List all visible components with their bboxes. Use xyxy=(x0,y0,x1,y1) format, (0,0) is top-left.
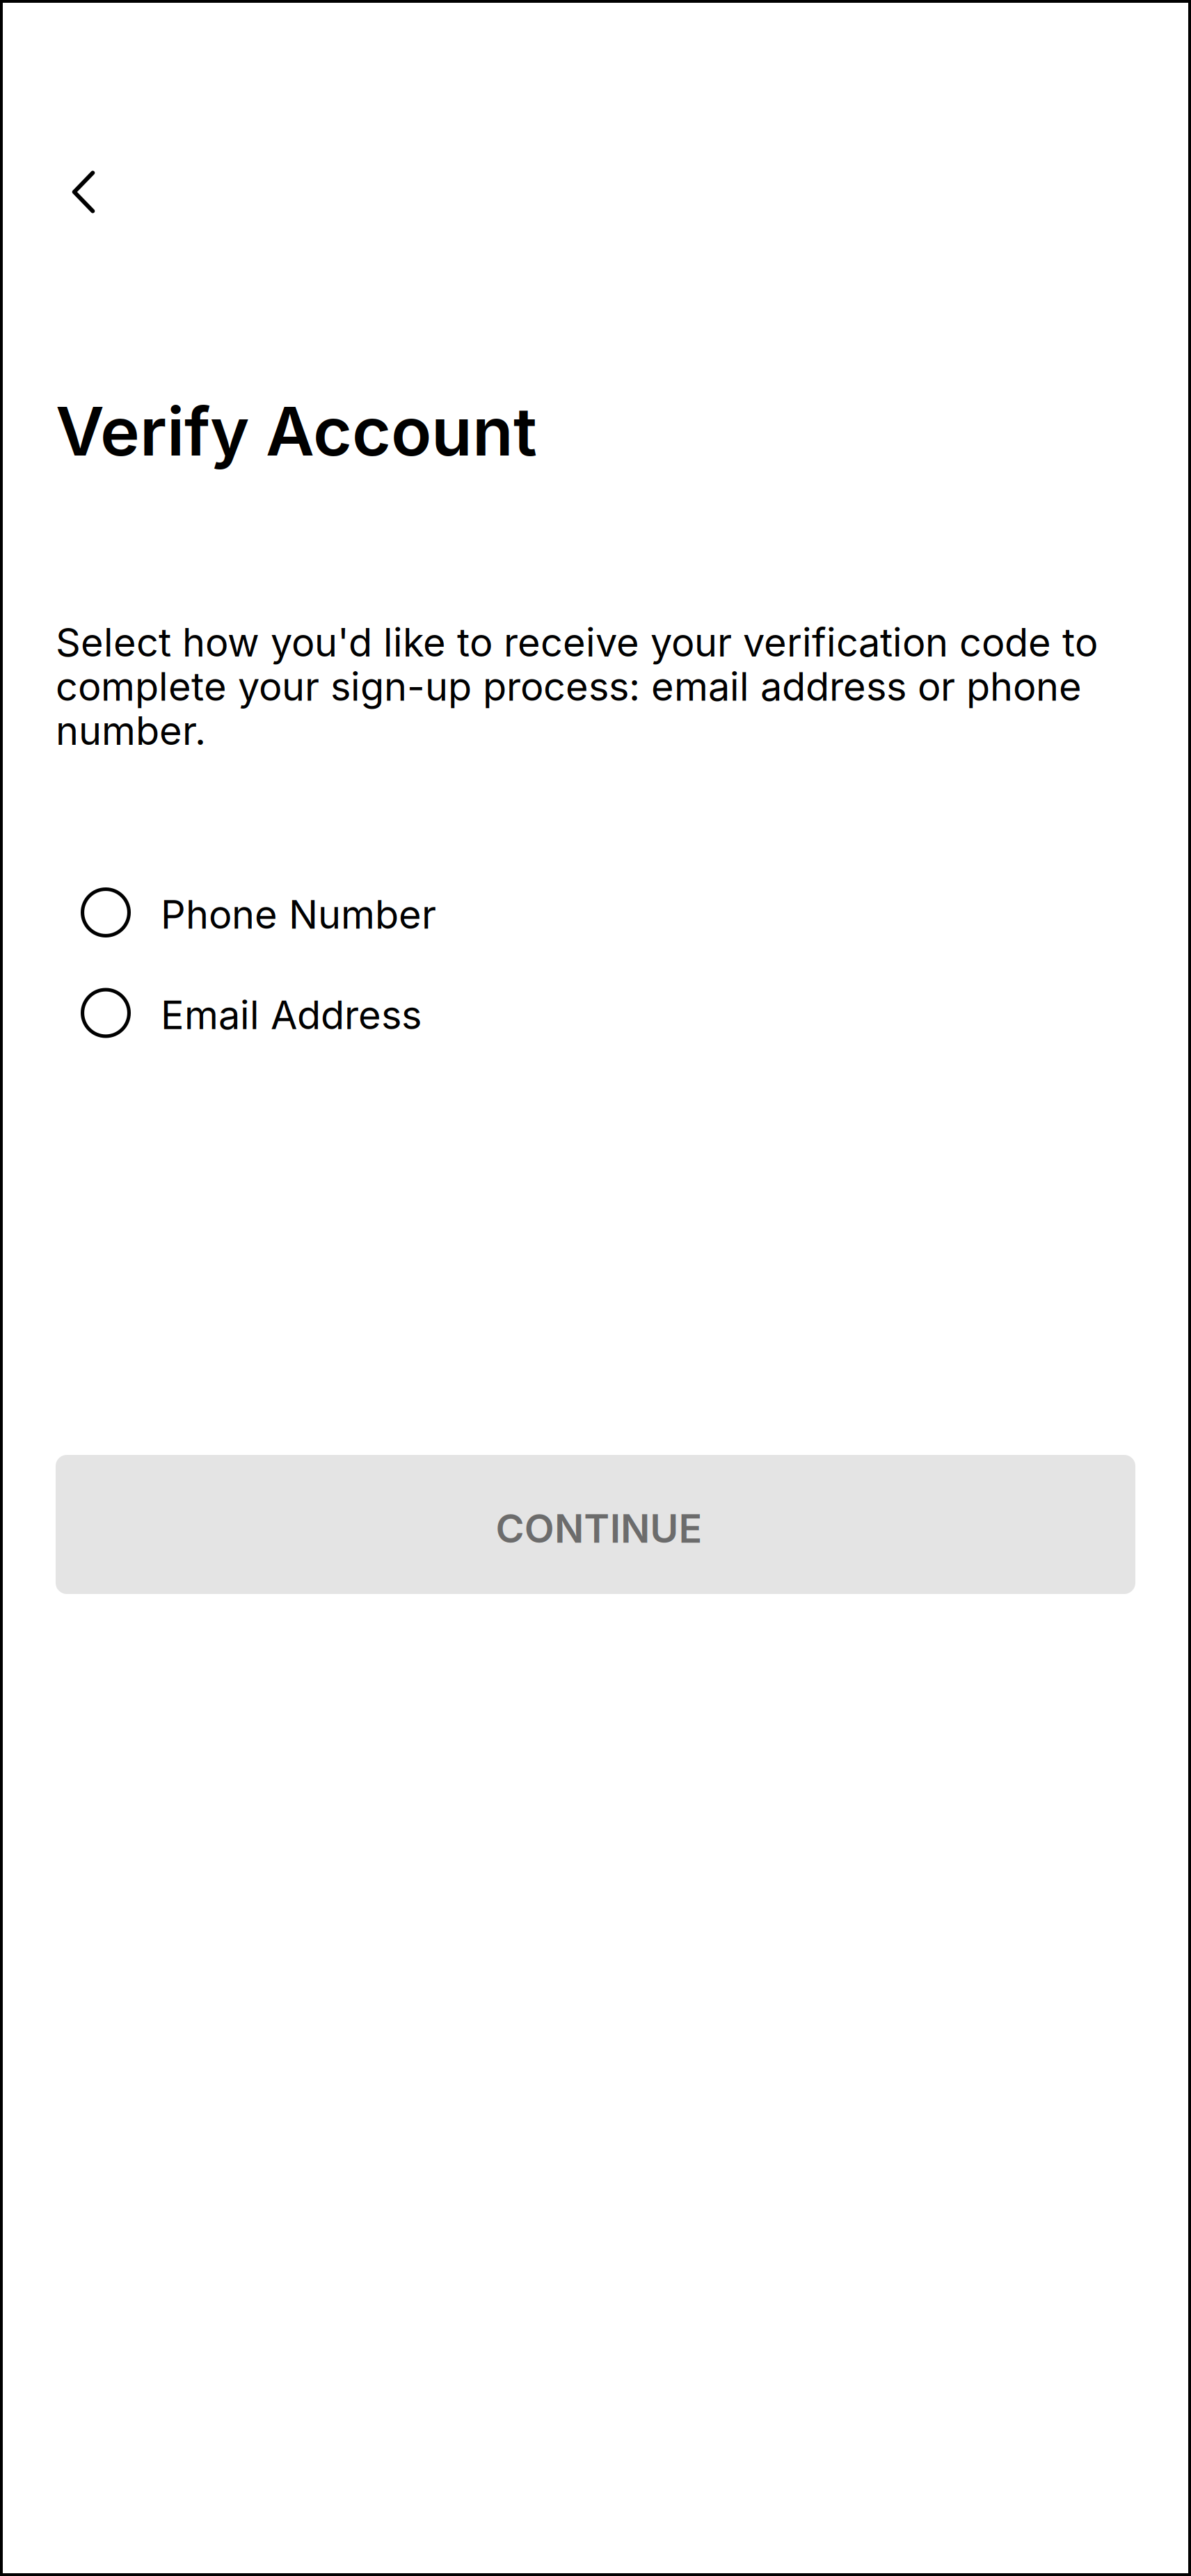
button[interactable]: CONTINUE xyxy=(56,1455,1135,1594)
staticText: CONTINUE xyxy=(496,1505,702,1552)
button[interactable]: Phone Number xyxy=(81,874,1135,951)
button[interactable]: Back xyxy=(38,146,129,238)
staticText: Verify Account xyxy=(56,391,537,472)
button[interactable]: Email Address xyxy=(81,975,1135,1051)
staticText: Phone Number xyxy=(161,891,436,938)
staticText: Select how you'd like to receive your ve… xyxy=(56,619,1098,754)
staticText: Email Address xyxy=(161,992,422,1038)
